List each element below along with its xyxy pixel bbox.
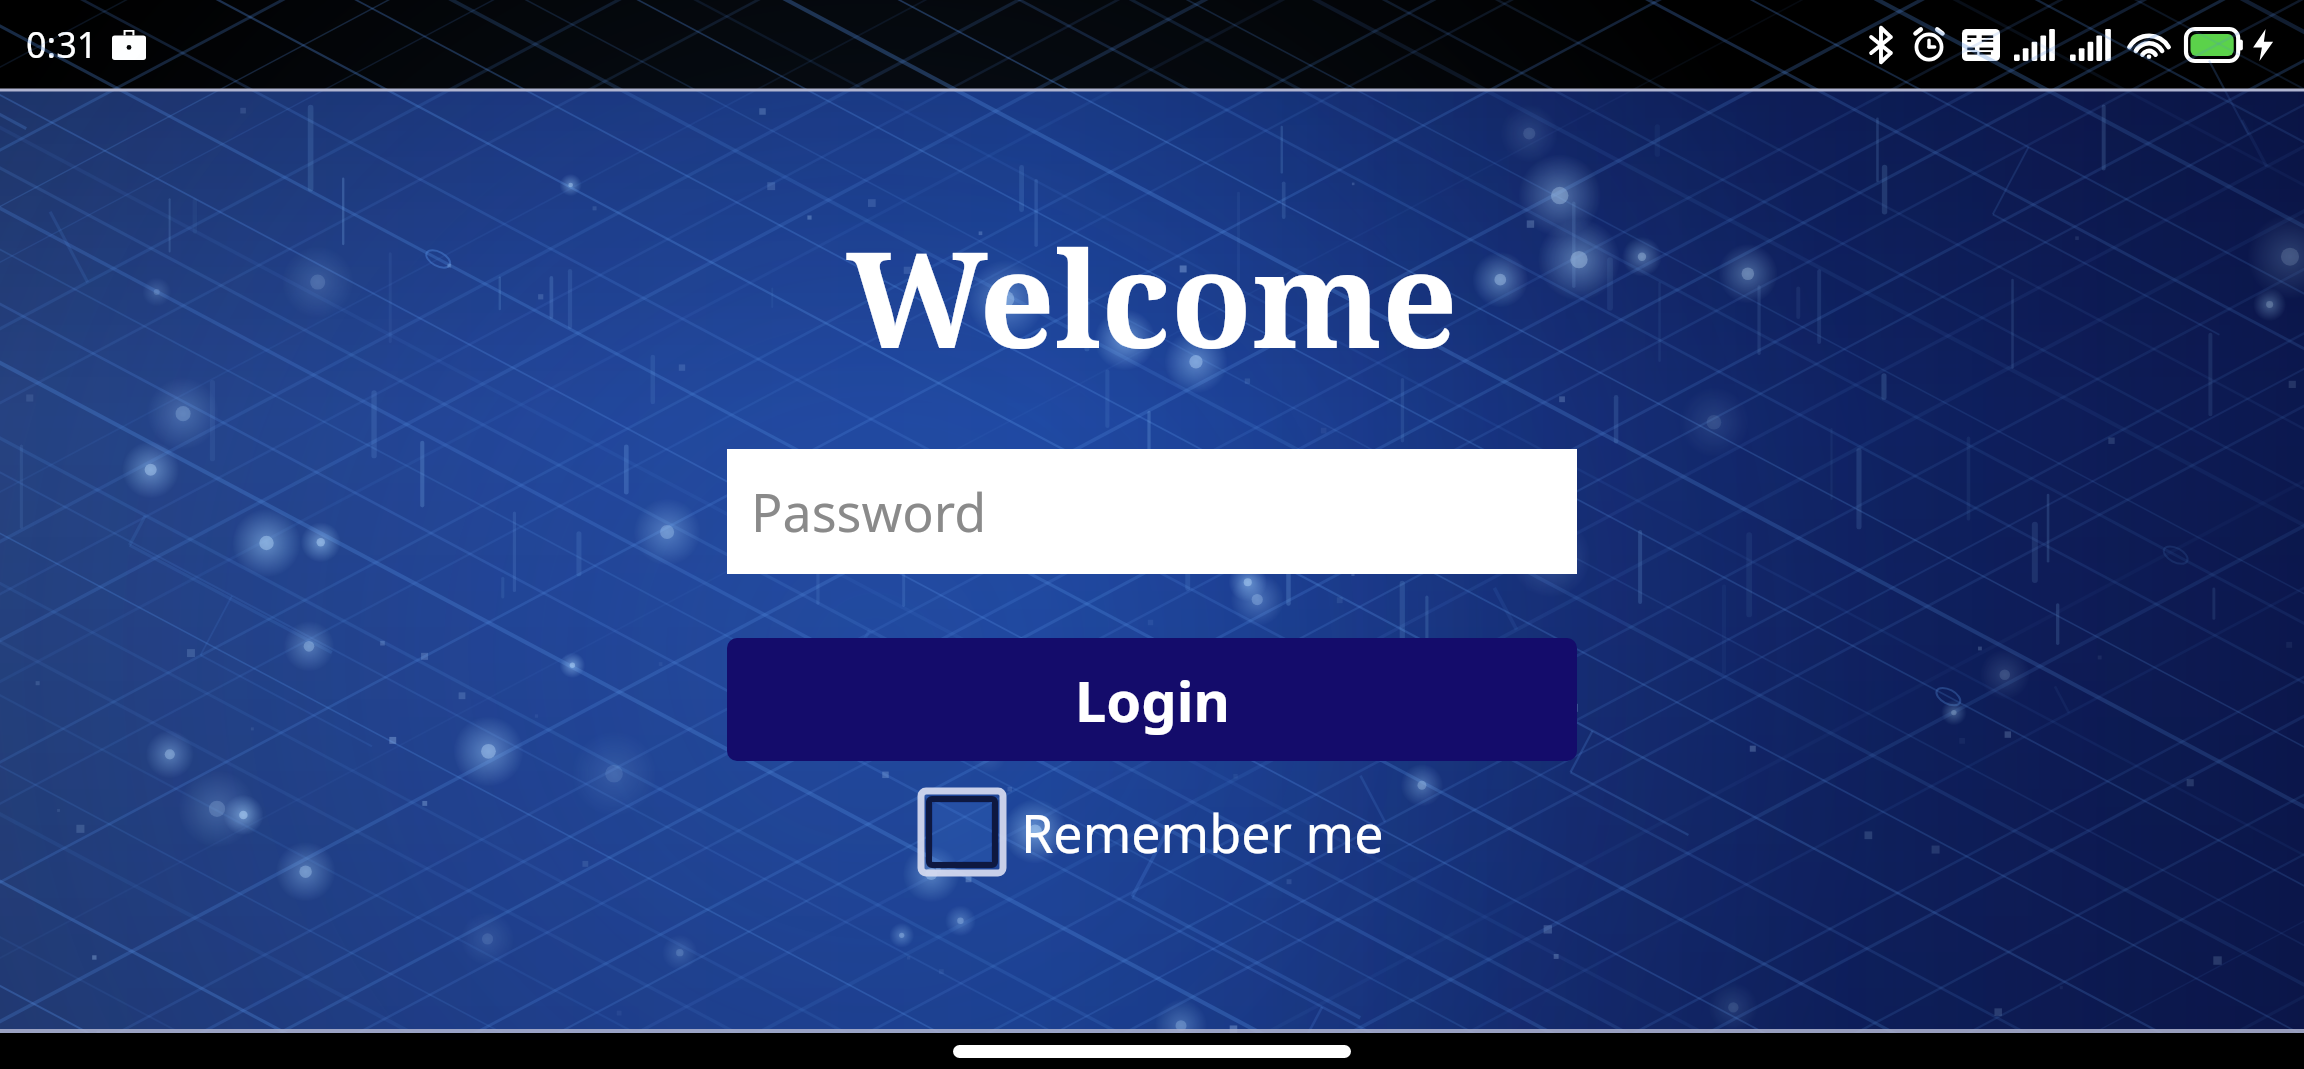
button[interactable]: Login <box>727 638 1577 761</box>
staticText: Password <box>751 476 987 547</box>
staticText: Login <box>1075 662 1230 738</box>
button[interactable]: Password <box>727 449 1577 574</box>
staticText: Remember me <box>1021 797 1384 868</box>
staticText: 0:31 <box>26 20 98 69</box>
button[interactable]: Home gesture bar <box>953 1045 1351 1058</box>
staticText: Welcome <box>846 207 1458 387</box>
other: Remember me checkbox <box>921 791 1003 873</box>
button[interactable]: Remember me checkbox <box>917 787 1388 877</box>
